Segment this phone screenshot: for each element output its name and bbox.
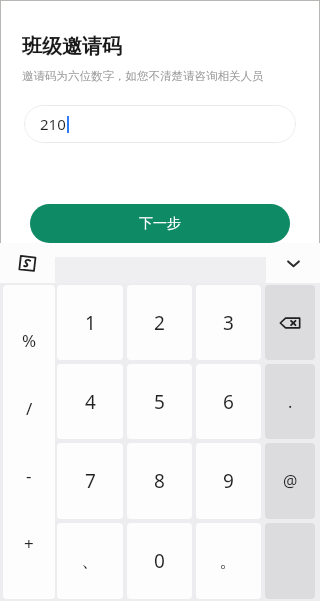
button[interactable]: % [3,285,55,599]
button[interactable]: 、 [57,523,123,599]
button[interactable]: 210 [24,105,296,143]
staticText: 5 [154,389,165,415]
staticText: 6 [223,389,234,415]
button[interactable]: 5 [127,364,192,439]
staticText: 1 [85,310,96,336]
staticText: 4 [85,389,96,415]
button[interactable]: 6 [196,364,261,439]
button[interactable]: Delete [265,285,315,360]
staticText: 8 [154,468,165,494]
staticText: 9 [223,468,234,494]
button[interactable]: 2 [127,285,192,360]
button[interactable]: 9 [196,443,261,519]
button[interactable]: 0 [127,523,192,599]
button[interactable]: Period [265,364,315,439]
button[interactable]: 8 [127,443,192,519]
staticText: @ [283,470,298,492]
button[interactable]: Sogou input method [10,246,44,280]
staticText: 、 [81,549,100,573]
button[interactable]: 4 [57,364,123,439]
staticText: 0 [154,548,165,574]
staticText: - [26,464,32,487]
button[interactable]: Hide keyboard [274,244,312,282]
staticText: . [288,391,293,413]
staticText: % [22,329,37,352]
staticText: 。 [219,549,238,573]
button[interactable]: 7 [57,443,123,519]
staticText: / [26,397,33,420]
button[interactable]: 下一步 [30,204,290,243]
button[interactable]: 1 [57,285,123,360]
staticText: 下一步 [139,215,181,233]
staticText: 210 [40,114,66,134]
staticText: 7 [85,468,96,494]
staticText: + [24,532,34,555]
staticText: 班级邀请码 [22,34,122,59]
button[interactable]: 。 [196,523,261,599]
button[interactable]: 3 [196,285,261,360]
staticText: 2 [154,310,165,336]
button[interactable]: At sign [265,443,315,519]
staticText: 邀请码为六位数字，如您不清楚请咨询相关人员 [22,69,264,83]
staticText: 3 [223,310,234,336]
